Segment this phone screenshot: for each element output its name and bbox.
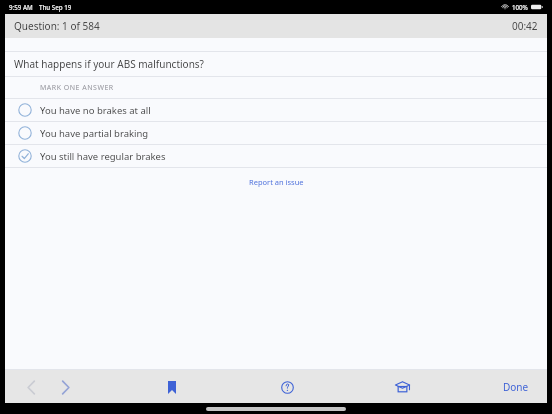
staticText: Report an issue [249,177,304,187]
staticText: Done [503,380,529,394]
button[interactable]: Report an issue [243,174,310,190]
staticText: 00:42 [512,19,538,33]
staticText: What happens if your ABS malfunctions? [14,57,204,71]
button[interactable]: You have no brakes at all [5,99,547,121]
staticText: You have partial braking [40,127,149,140]
staticText: Question: 1 of 584 [14,19,100,33]
button[interactable]: Next question [51,373,79,401]
button[interactable]: Help [272,372,302,402]
button[interactable]: You still have regular brakes [5,145,547,167]
button[interactable]: Done [495,375,537,399]
button[interactable]: Study mode [387,372,417,402]
button[interactable]: Bookmark [157,372,187,402]
staticText: 9:59 AM [9,3,33,11]
staticText: You have no brakes at all [40,104,151,117]
staticText: MARK ONE ANSWER [40,83,114,93]
staticText: Thu Sep 19 [39,3,72,11]
staticText: You still have regular brakes [40,150,166,163]
button[interactable]: Question: 1 of 584 [5,14,547,38]
staticText: 100% [512,3,528,11]
button[interactable]: Previous question [17,373,45,401]
button[interactable]: You have partial braking [5,122,547,144]
